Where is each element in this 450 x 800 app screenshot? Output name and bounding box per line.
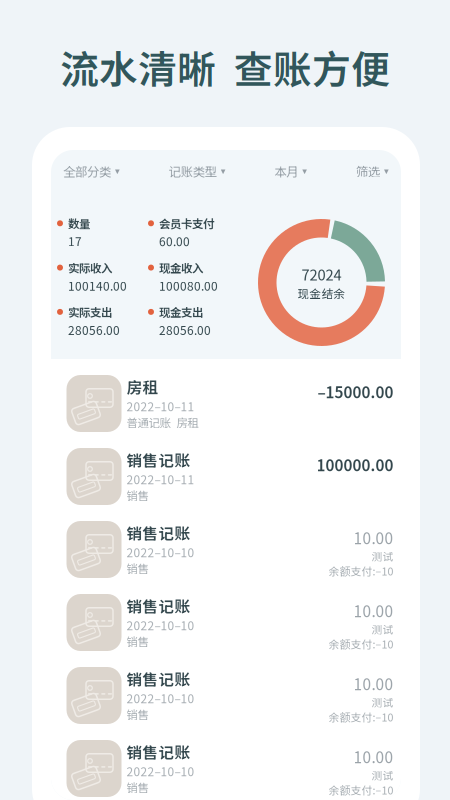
button[interactable]: 销售记账 — [51, 586, 401, 659]
staticText: 10.00 — [353, 526, 393, 549]
staticText: 测试 — [371, 694, 393, 710]
button[interactable]: 房租 — [51, 367, 401, 440]
button[interactable]: 销售记账 — [51, 513, 401, 586]
staticText: 销售 — [126, 706, 148, 723]
button[interactable]: 销售记账 — [51, 659, 401, 732]
staticText: 房租 — [126, 375, 158, 398]
staticText: 2022–10–10 — [126, 689, 194, 707]
staticText: ▾ — [115, 166, 120, 176]
staticText: –15000.00 — [317, 380, 393, 403]
staticText: 100140.00 — [68, 277, 127, 294]
staticText: 记账类型 — [169, 162, 217, 180]
staticText: 60.00 — [159, 233, 190, 250]
button[interactable]: 销售记账 — [51, 440, 401, 513]
staticText: 销售 — [126, 560, 148, 577]
staticText: 100080.00 — [159, 277, 218, 294]
staticText: 2022–10–11 — [126, 397, 194, 415]
staticText: 17 — [68, 233, 82, 250]
staticText: 72024 — [301, 263, 341, 285]
staticText: 现金支出 — [159, 304, 203, 320]
staticText: 实际支出 — [68, 304, 112, 320]
staticText: 本月 — [274, 162, 298, 180]
staticText: 28056.00 — [159, 321, 211, 338]
staticText: 2022–10–10 — [126, 762, 194, 780]
staticText: 2022–10–10 — [126, 616, 194, 634]
staticText: ▾ — [384, 166, 389, 176]
staticText: 现金收入 — [159, 259, 203, 276]
staticText: 销售 — [126, 633, 148, 650]
staticText: 测试 — [371, 621, 393, 637]
staticText: 100000.00 — [316, 453, 393, 476]
staticText: 余额支付:–10 — [328, 563, 393, 578]
staticText: 销售记账 — [126, 448, 190, 471]
staticText: 销售 — [126, 779, 148, 796]
staticText: 销售 — [126, 487, 148, 504]
button[interactable]: 筛选 — [352, 150, 393, 192]
staticText: 筛选 — [356, 162, 380, 180]
staticText: 10.00 — [353, 745, 393, 768]
staticText: 10.00 — [353, 599, 393, 622]
staticText: 实际收入 — [68, 259, 112, 276]
staticText: 销售记账 — [126, 740, 190, 763]
button[interactable]: 全部分类 — [59, 150, 124, 192]
staticText: 余额支付:–10 — [328, 709, 393, 724]
staticText: 测试 — [371, 767, 393, 783]
staticText: 28056.00 — [68, 321, 120, 338]
staticText: 测试 — [371, 548, 393, 564]
button[interactable]: 本月 — [270, 150, 311, 192]
staticText: 全部分类 — [63, 162, 111, 180]
staticText: 会员卡支付 — [159, 215, 214, 232]
staticText: 10.00 — [353, 672, 393, 695]
staticText: 流水清晰 查账方便 — [60, 39, 390, 95]
staticText: 销售记账 — [126, 667, 190, 690]
staticText: 2022–10–10 — [126, 543, 194, 561]
button[interactable]: 记账类型 — [165, 150, 230, 192]
staticText: 2022–10–11 — [126, 470, 194, 488]
staticText: 余额支付:–10 — [328, 782, 393, 797]
staticText: 余额支付:–10 — [328, 636, 393, 651]
staticText: ▾ — [302, 166, 307, 176]
staticText: 销售记账 — [126, 521, 190, 544]
button[interactable]: 销售记账 — [51, 732, 401, 800]
staticText: 销售记账 — [126, 594, 190, 617]
staticText: 现金结余 — [297, 285, 345, 301]
staticText: ▾ — [221, 166, 226, 176]
staticText: 普通记账 房租 — [126, 414, 198, 431]
staticText: 数量 — [68, 215, 90, 232]
